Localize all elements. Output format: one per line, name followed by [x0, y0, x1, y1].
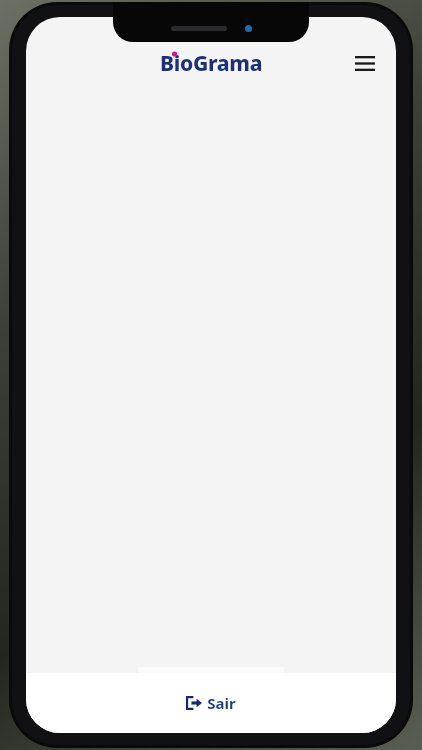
button[interactable]: BioGrama	[154, 47, 269, 80]
staticText: BioGrama	[160, 49, 263, 78]
other: Sair	[186, 696, 202, 710]
button[interactable]: Menu	[348, 46, 382, 80]
button[interactable]: Sair	[26, 683, 396, 723]
staticText: Sair	[207, 693, 236, 713]
